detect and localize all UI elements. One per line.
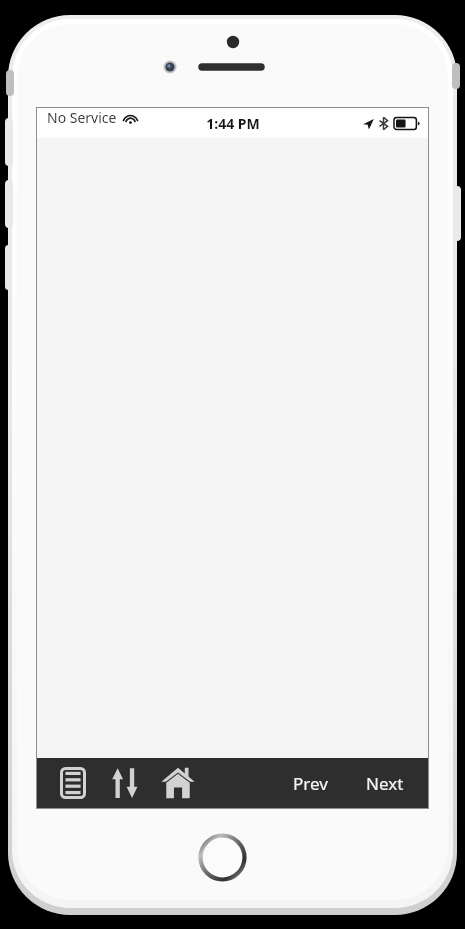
staticText: Prev	[293, 772, 328, 795]
button[interactable]: Sort	[103, 760, 147, 806]
button[interactable]: Prev	[283, 760, 338, 806]
staticText: No Service	[47, 108, 117, 127]
staticText: Next	[366, 772, 404, 795]
staticText: 1:44 PM	[206, 114, 260, 133]
button[interactable]: List	[51, 760, 95, 806]
button[interactable]: Home	[155, 760, 201, 806]
button[interactable]: Home button	[198, 833, 247, 882]
button[interactable]: Next	[356, 760, 414, 806]
